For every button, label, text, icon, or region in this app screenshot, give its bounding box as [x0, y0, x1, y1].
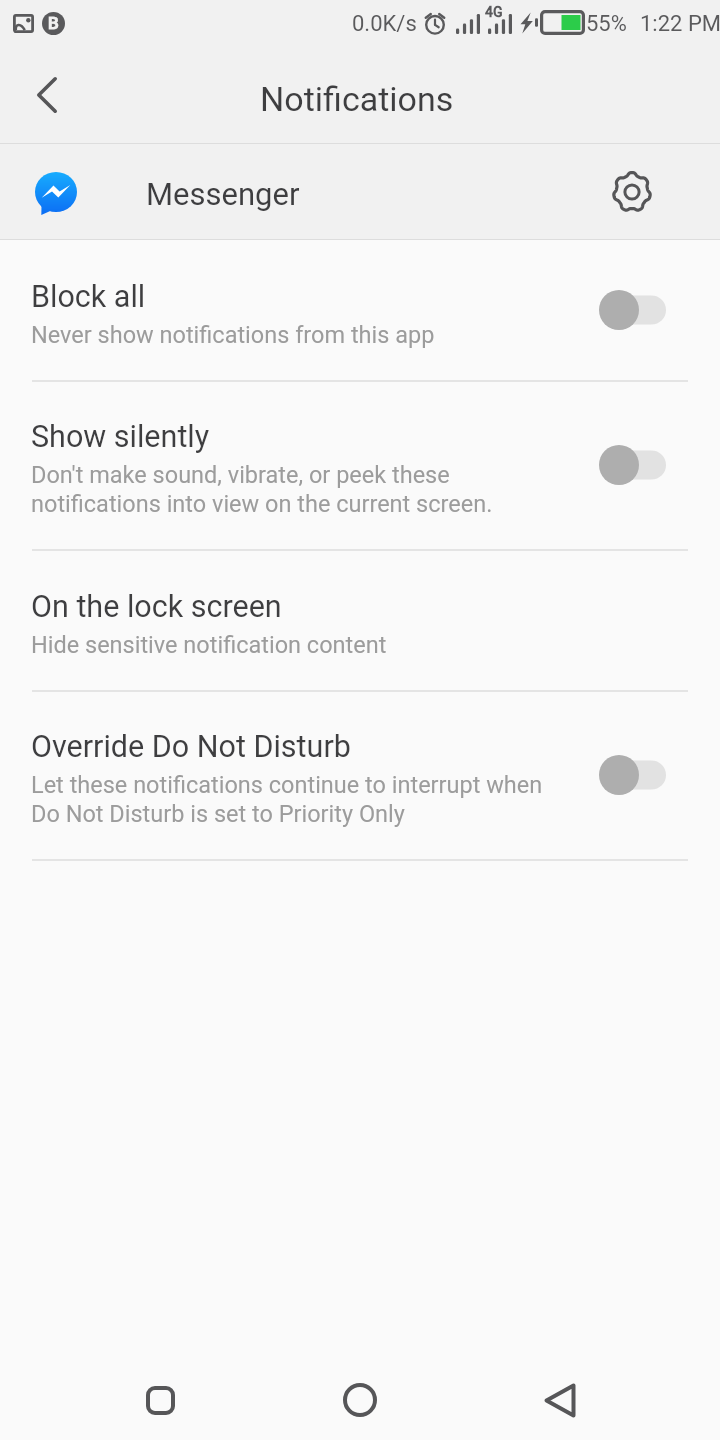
- staticText: 0.0K/s: [352, 11, 417, 37]
- button[interactable]: Back: [6, 66, 70, 130]
- staticText: Don't make sound, vibrate, or peek these…: [31, 461, 493, 517]
- button[interactable]: On the lock screen: [0, 550, 720, 690]
- staticText: 1:22 PM: [640, 11, 720, 37]
- button[interactable]: Toggle Block all: [588, 275, 688, 345]
- staticText: Hide sensitive notification content: [31, 631, 387, 659]
- button[interactable]: Override Do Not Disturb: [0, 691, 720, 859]
- staticText: B: [48, 13, 59, 33]
- staticText: 55%: [586, 11, 627, 37]
- button[interactable]: Settings: [600, 160, 664, 224]
- button[interactable]: Messenger: [0, 144, 720, 239]
- button[interactable]: Back: [520, 1360, 600, 1440]
- button[interactable]: Toggle Show silently: [588, 430, 688, 500]
- staticText: Override Do Not Disturb: [31, 729, 351, 765]
- staticText: On the lock screen: [31, 589, 282, 625]
- button[interactable]: Recents: [120, 1360, 200, 1440]
- staticText: 4G: [485, 4, 503, 20]
- staticText: Block all: [31, 279, 146, 315]
- button[interactable]: Toggle Override Do Not Disturb: [588, 740, 688, 810]
- staticText: Show silently: [31, 419, 210, 455]
- staticText: Messenger: [146, 176, 300, 212]
- staticText: Never show notifications from this app: [31, 321, 435, 349]
- button[interactable]: Block all: [0, 240, 720, 380]
- button[interactable]: Show silently: [0, 381, 720, 549]
- button[interactable]: Home: [320, 1360, 400, 1440]
- staticText: Let these notifications continue to inte…: [31, 771, 543, 827]
- staticText: Notifications: [260, 79, 454, 119]
